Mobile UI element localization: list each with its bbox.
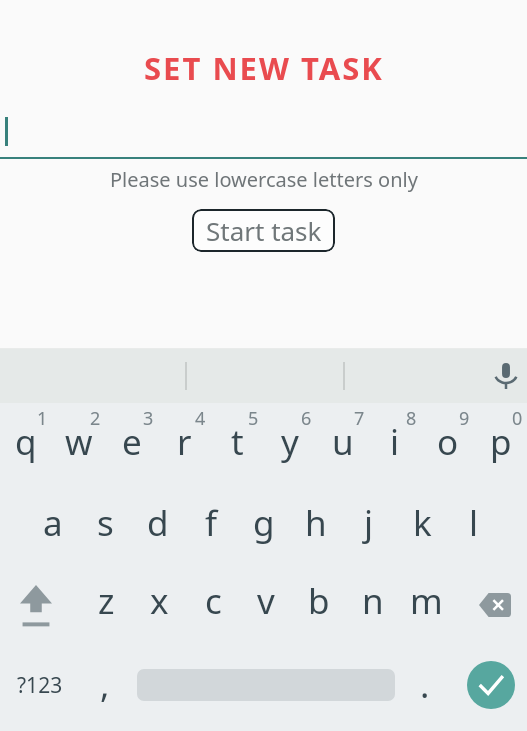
staticText: 3 bbox=[143, 406, 154, 431]
button[interactable]: b bbox=[289, 577, 349, 625]
staticText: r bbox=[177, 418, 192, 466]
staticText: 8 bbox=[406, 406, 417, 431]
button[interactable]: w bbox=[49, 418, 109, 466]
button[interactable]: l bbox=[444, 499, 504, 547]
staticText: SET NEW TASK bbox=[144, 47, 384, 89]
button[interactable]: p bbox=[471, 418, 527, 466]
button[interactable]: c bbox=[183, 577, 243, 625]
staticText: m bbox=[410, 577, 443, 625]
button[interactable]: v bbox=[236, 577, 296, 625]
staticText: Start task bbox=[206, 213, 322, 248]
button[interactable]: f bbox=[181, 499, 241, 547]
button[interactable]: g bbox=[234, 499, 294, 547]
staticText: 5 bbox=[248, 406, 259, 431]
button[interactable]: t bbox=[207, 418, 267, 466]
staticText: ?123 bbox=[17, 671, 63, 700]
button[interactable]: h bbox=[286, 499, 346, 547]
staticText: y bbox=[281, 418, 299, 466]
staticText: 1 bbox=[37, 406, 48, 431]
staticText: p bbox=[490, 418, 512, 466]
staticText: k bbox=[413, 499, 432, 547]
staticText: t bbox=[231, 418, 244, 466]
button[interactable]: d bbox=[128, 499, 188, 547]
button[interactable]: y bbox=[260, 418, 320, 466]
staticText: 0 bbox=[512, 406, 523, 431]
button[interactable]: x bbox=[129, 577, 189, 625]
button[interactable] bbox=[20, 585, 52, 629]
button[interactable]: o bbox=[418, 418, 478, 466]
staticText: 6 bbox=[301, 406, 312, 431]
staticText: x bbox=[150, 577, 169, 625]
staticText: w bbox=[65, 418, 93, 466]
staticText: i bbox=[390, 418, 400, 466]
staticText: n bbox=[362, 577, 384, 625]
button[interactable]: z bbox=[76, 577, 136, 625]
button[interactable]: m bbox=[396, 577, 456, 625]
staticText: 9 bbox=[459, 406, 470, 431]
staticText: . bbox=[420, 661, 430, 709]
staticText: h bbox=[305, 499, 327, 547]
staticText: 4 bbox=[195, 406, 206, 431]
button[interactable]: u bbox=[313, 418, 373, 466]
staticText: u bbox=[332, 418, 354, 466]
staticText: b bbox=[308, 577, 330, 625]
button[interactable]: ?123 bbox=[10, 661, 70, 709]
staticText: f bbox=[205, 499, 218, 547]
button[interactable]: , bbox=[75, 661, 135, 709]
staticText: v bbox=[257, 577, 275, 625]
button[interactable] bbox=[467, 661, 515, 709]
button[interactable]: . bbox=[395, 661, 455, 709]
staticText: Please use lowercase letters only bbox=[110, 166, 418, 193]
button[interactable]: j bbox=[339, 499, 399, 547]
staticText: z bbox=[98, 577, 115, 625]
staticText: d bbox=[147, 499, 169, 547]
button[interactable]: q bbox=[0, 418, 56, 466]
button[interactable]: k bbox=[392, 499, 452, 547]
staticText: c bbox=[205, 577, 222, 625]
staticText: 7 bbox=[354, 406, 365, 431]
staticText: l bbox=[469, 499, 479, 547]
staticText: a bbox=[43, 499, 63, 547]
button[interactable] bbox=[0, 105, 527, 159]
button[interactable]: i bbox=[365, 418, 425, 466]
button[interactable] bbox=[479, 593, 511, 617]
button[interactable]: r bbox=[154, 418, 214, 466]
staticText: g bbox=[253, 499, 275, 547]
button[interactable]: a bbox=[23, 499, 83, 547]
button[interactable] bbox=[495, 363, 517, 389]
button[interactable]: s bbox=[75, 499, 135, 547]
button[interactable]: n bbox=[343, 577, 403, 625]
button[interactable]: Start task bbox=[192, 209, 335, 252]
staticText: q bbox=[15, 418, 37, 466]
staticText: s bbox=[97, 499, 114, 547]
staticText: o bbox=[437, 418, 459, 466]
staticText: 2 bbox=[90, 406, 101, 431]
staticText: , bbox=[100, 661, 110, 709]
staticText: j bbox=[364, 499, 374, 547]
staticText: e bbox=[122, 418, 142, 466]
button[interactable]: e bbox=[102, 418, 162, 466]
